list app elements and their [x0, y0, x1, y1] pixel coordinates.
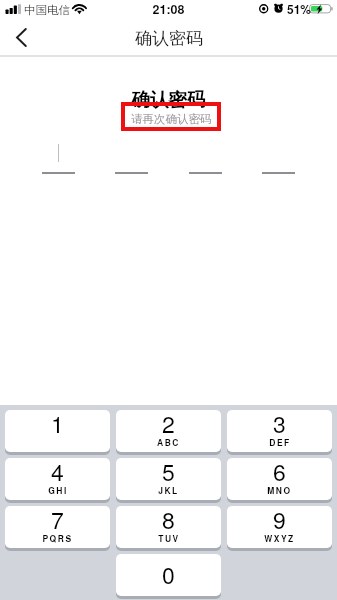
- button[interactable]: Back: [0, 22, 42, 57]
- staticText: 4: [51, 458, 64, 488]
- staticText: GHI: [48, 484, 68, 496]
- button[interactable]: 2: [116, 410, 221, 452]
- staticText: WXYZ: [264, 532, 295, 544]
- staticText: 请再次确认密码: [131, 112, 212, 126]
- button[interactable]: 0: [116, 554, 221, 596]
- staticText: 7: [51, 506, 64, 536]
- staticText: 1: [51, 410, 64, 440]
- staticText: MNO: [267, 484, 292, 496]
- button[interactable]: 4: [5, 458, 110, 500]
- staticText: 2: [162, 410, 175, 440]
- staticText: 6: [273, 458, 286, 488]
- staticText: 51%: [287, 0, 312, 17]
- other: Location: [259, 4, 269, 14]
- button[interactable]: 5: [116, 458, 221, 500]
- staticText: TUV: [158, 532, 180, 544]
- staticText: 5: [162, 458, 175, 488]
- staticText: 0: [162, 558, 175, 591]
- staticText: JKL: [158, 484, 179, 496]
- button[interactable]: 1: [5, 410, 110, 452]
- staticText: 3: [273, 410, 286, 440]
- button[interactable]: 9: [227, 506, 332, 548]
- staticText: 21:08: [0, 0, 337, 18]
- staticText: DEF: [269, 436, 291, 448]
- button[interactable]: 8: [116, 506, 221, 548]
- button[interactable]: 7: [5, 506, 110, 548]
- staticText: 确认密码: [0, 88, 337, 111]
- staticText: 8: [162, 506, 175, 536]
- button[interactable]: 3: [227, 410, 332, 452]
- staticText: 确认密码: [135, 28, 203, 49]
- staticText: ABC: [157, 436, 180, 448]
- other: Alarm: [274, 3, 284, 14]
- button[interactable]: 6: [227, 458, 332, 500]
- staticText: 中国电信: [24, 3, 70, 17]
- staticText: 9: [273, 506, 286, 536]
- staticText: PQRS: [42, 532, 73, 544]
